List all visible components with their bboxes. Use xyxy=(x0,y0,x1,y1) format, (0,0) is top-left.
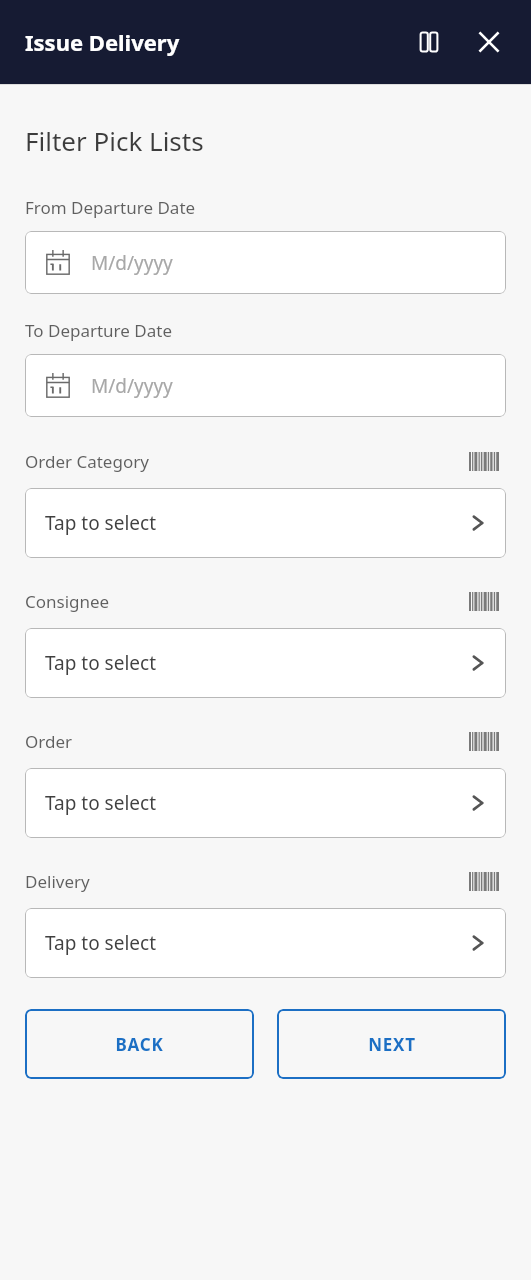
staticText: From Departure Date xyxy=(25,196,196,219)
button[interactable]: Pause xyxy=(405,18,453,66)
staticText: NEXT xyxy=(368,1033,416,1056)
button[interactable]: Scan barcode xyxy=(462,727,506,755)
staticText: Tap to select xyxy=(45,930,157,956)
button[interactable]: Scan barcode xyxy=(462,587,506,615)
button[interactable]: BACK xyxy=(25,1009,254,1079)
staticText: BACK xyxy=(115,1033,164,1056)
staticText: M/d/yyyy xyxy=(91,250,173,276)
button[interactable]: M/d/yyyy xyxy=(25,354,506,417)
staticText: Delivery xyxy=(25,870,90,893)
staticText: Filter Pick Lists xyxy=(25,123,204,158)
button[interactable]: NEXT xyxy=(277,1009,506,1079)
button[interactable]: Scan barcode xyxy=(462,447,506,475)
button[interactable]: Tap to select xyxy=(25,488,506,558)
staticText: Consignee xyxy=(25,590,110,613)
staticText: Order Category xyxy=(25,450,149,473)
button[interactable]: Tap to select xyxy=(25,768,506,838)
button[interactable]: Close xyxy=(465,18,513,66)
staticText: M/d/yyyy xyxy=(91,373,173,399)
staticText: Issue Delivery xyxy=(25,27,180,57)
staticText: Tap to select xyxy=(45,650,157,676)
staticText: Tap to select xyxy=(45,510,157,536)
button[interactable]: Scan barcode xyxy=(462,867,506,895)
button[interactable]: Tap to select xyxy=(25,628,506,698)
staticText: Tap to select xyxy=(45,790,157,816)
staticText: Order xyxy=(25,730,73,753)
staticText: To Departure Date xyxy=(25,319,172,342)
button[interactable]: M/d/yyyy xyxy=(25,231,506,294)
button[interactable]: Tap to select xyxy=(25,908,506,978)
